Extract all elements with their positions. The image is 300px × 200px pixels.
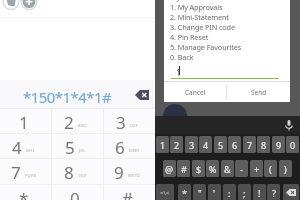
staticText: 7	[11, 161, 21, 184]
button[interactable]: 2	[51, 108, 103, 133]
staticText: 3. Change PIN code	[170, 22, 235, 32]
button[interactable]: 2	[170, 136, 183, 153]
button[interactable]: #	[177, 160, 190, 177]
staticText: 1	[160, 139, 166, 151]
button[interactable]: )	[279, 160, 292, 177]
button[interactable]: 4	[0, 133, 51, 158]
staticText: 5	[218, 139, 224, 151]
staticText: DEF	[130, 123, 139, 128]
staticText: 2. Mini-Statement	[170, 12, 229, 22]
button[interactable]: (	[264, 160, 277, 177]
button[interactable]: Recents	[3, 0, 19, 11]
button[interactable]: 3	[185, 136, 198, 153]
button[interactable]: 0	[286, 136, 299, 153]
staticText: '	[213, 187, 216, 199]
button[interactable]: "	[193, 184, 206, 200]
button[interactable]: 4	[199, 136, 212, 153]
staticText: 2	[174, 139, 180, 151]
button[interactable]: 6	[228, 136, 241, 153]
staticText: 9	[114, 161, 124, 184]
button[interactable]: 9	[272, 136, 285, 153]
staticText: 5. Manage Favourites	[170, 42, 242, 52]
staticText: MNO	[129, 148, 140, 153]
staticText: 8	[261, 139, 267, 151]
button[interactable]: 7	[0, 158, 51, 183]
staticText: "	[198, 187, 202, 199]
button[interactable]: @	[163, 160, 176, 177]
button[interactable]: Add contact	[21, 0, 37, 11]
button[interactable]: !	[253, 184, 266, 200]
button[interactable]: 6	[103, 133, 155, 158]
button[interactable]: 7	[243, 136, 256, 153]
button[interactable]: ?	[267, 184, 280, 200]
button[interactable]: Backspace	[135, 90, 149, 100]
staticText: *	[19, 187, 29, 200]
staticText: @	[165, 163, 174, 175]
staticText: 5	[65, 136, 75, 159]
staticText: 3	[189, 139, 195, 151]
button[interactable]: *	[0, 184, 51, 200]
button[interactable]: *	[178, 184, 191, 200]
button[interactable]: -	[235, 160, 248, 177]
button[interactable]: Cancel	[164, 82, 226, 102]
staticText: +	[254, 163, 260, 175]
staticText: 4. Pin Reset	[170, 32, 209, 42]
button[interactable]: 1	[0, 108, 51, 133]
staticText: 6	[115, 136, 125, 159]
button[interactable]: Backspace	[283, 184, 299, 200]
staticText: :	[228, 187, 231, 199]
staticText: %	[209, 163, 217, 175]
staticText: (	[269, 163, 272, 175]
button[interactable]: 5	[51, 133, 103, 158]
staticText: 6	[232, 139, 238, 151]
staticText: PQRS	[25, 173, 37, 178]
staticText: TUV	[78, 173, 87, 178]
button[interactable]: :	[223, 184, 236, 200]
staticText: -	[240, 163, 243, 175]
staticText: 2	[64, 111, 74, 134]
staticText: $	[196, 163, 202, 175]
staticText: #	[181, 163, 187, 175]
button[interactable]: 5	[214, 136, 227, 153]
staticText: Send	[251, 88, 267, 97]
button[interactable]: 3	[103, 108, 155, 133]
button[interactable]: %	[206, 160, 219, 177]
staticText: ?	[272, 187, 276, 199]
staticText: *150*1*4*1#	[23, 87, 112, 107]
staticText: 4	[12, 136, 22, 159]
button[interactable]: Send	[227, 82, 290, 102]
staticText: WXYZ	[128, 173, 141, 178]
staticText: 9	[276, 139, 282, 151]
staticText: Cancel	[185, 88, 206, 97]
button[interactable]: '	[208, 184, 221, 200]
staticText: 0	[70, 187, 80, 200]
staticText: 0. Back	[170, 52, 194, 62]
staticText: !	[258, 187, 261, 199]
button[interactable]: $	[192, 160, 205, 177]
staticText: &	[224, 163, 231, 175]
staticText: 1	[176, 66, 182, 78]
staticText: =\<	[160, 189, 170, 197]
button[interactable]: 1	[156, 136, 169, 153]
button[interactable]: 0	[51, 184, 103, 200]
button[interactable]: 8	[257, 136, 270, 153]
staticText: My Account	[170, 0, 209, 2]
staticText: 3	[116, 111, 126, 134]
staticText: )	[284, 163, 287, 175]
button[interactable]: 8	[51, 158, 103, 183]
button[interactable]: +	[250, 160, 263, 177]
button[interactable]: Voice input	[285, 120, 293, 131]
staticText: ABC	[78, 123, 87, 128]
staticText: 0	[290, 139, 296, 151]
staticText: 7	[247, 139, 253, 151]
staticText: 1	[19, 111, 29, 134]
button[interactable]: &	[221, 160, 234, 177]
button[interactable]: 9	[103, 158, 155, 183]
staticText: 8	[64, 161, 74, 184]
button[interactable]: #	[103, 184, 155, 200]
staticText: *	[182, 187, 187, 199]
button[interactable]: Symbols	[156, 184, 174, 200]
staticText: 1. My Approvals	[170, 2, 223, 12]
staticText: #	[122, 187, 133, 200]
button[interactable]: ;	[238, 184, 251, 200]
